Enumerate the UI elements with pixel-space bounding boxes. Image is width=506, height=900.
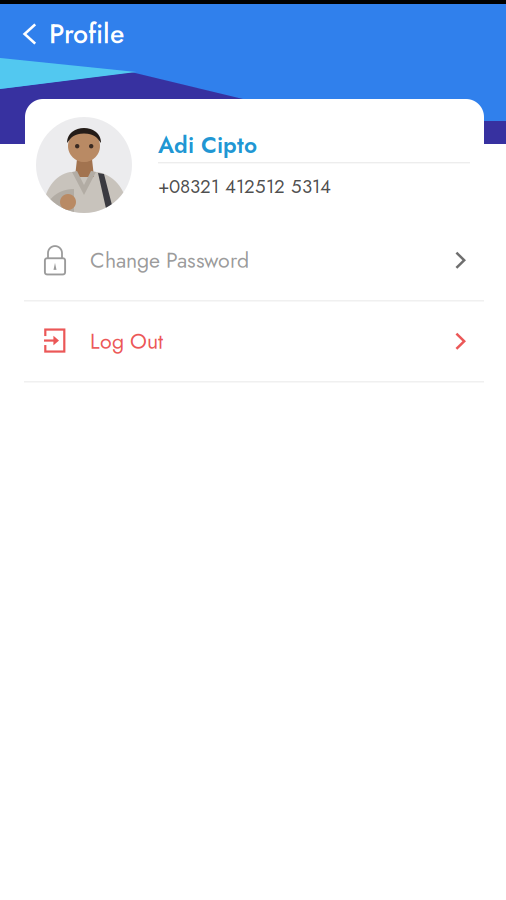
button[interactable]: Log Out (0, 301, 506, 382)
staticText: Log Out (90, 326, 163, 357)
button[interactable]: Change Password (0, 220, 506, 301)
staticText: Change Password (90, 245, 249, 276)
staticText: +08321 412512 5314 (158, 173, 331, 200)
staticText: Profile (49, 15, 124, 53)
button[interactable]: Profile (0, 10, 140, 58)
staticText: Adi Cipto (158, 129, 257, 161)
